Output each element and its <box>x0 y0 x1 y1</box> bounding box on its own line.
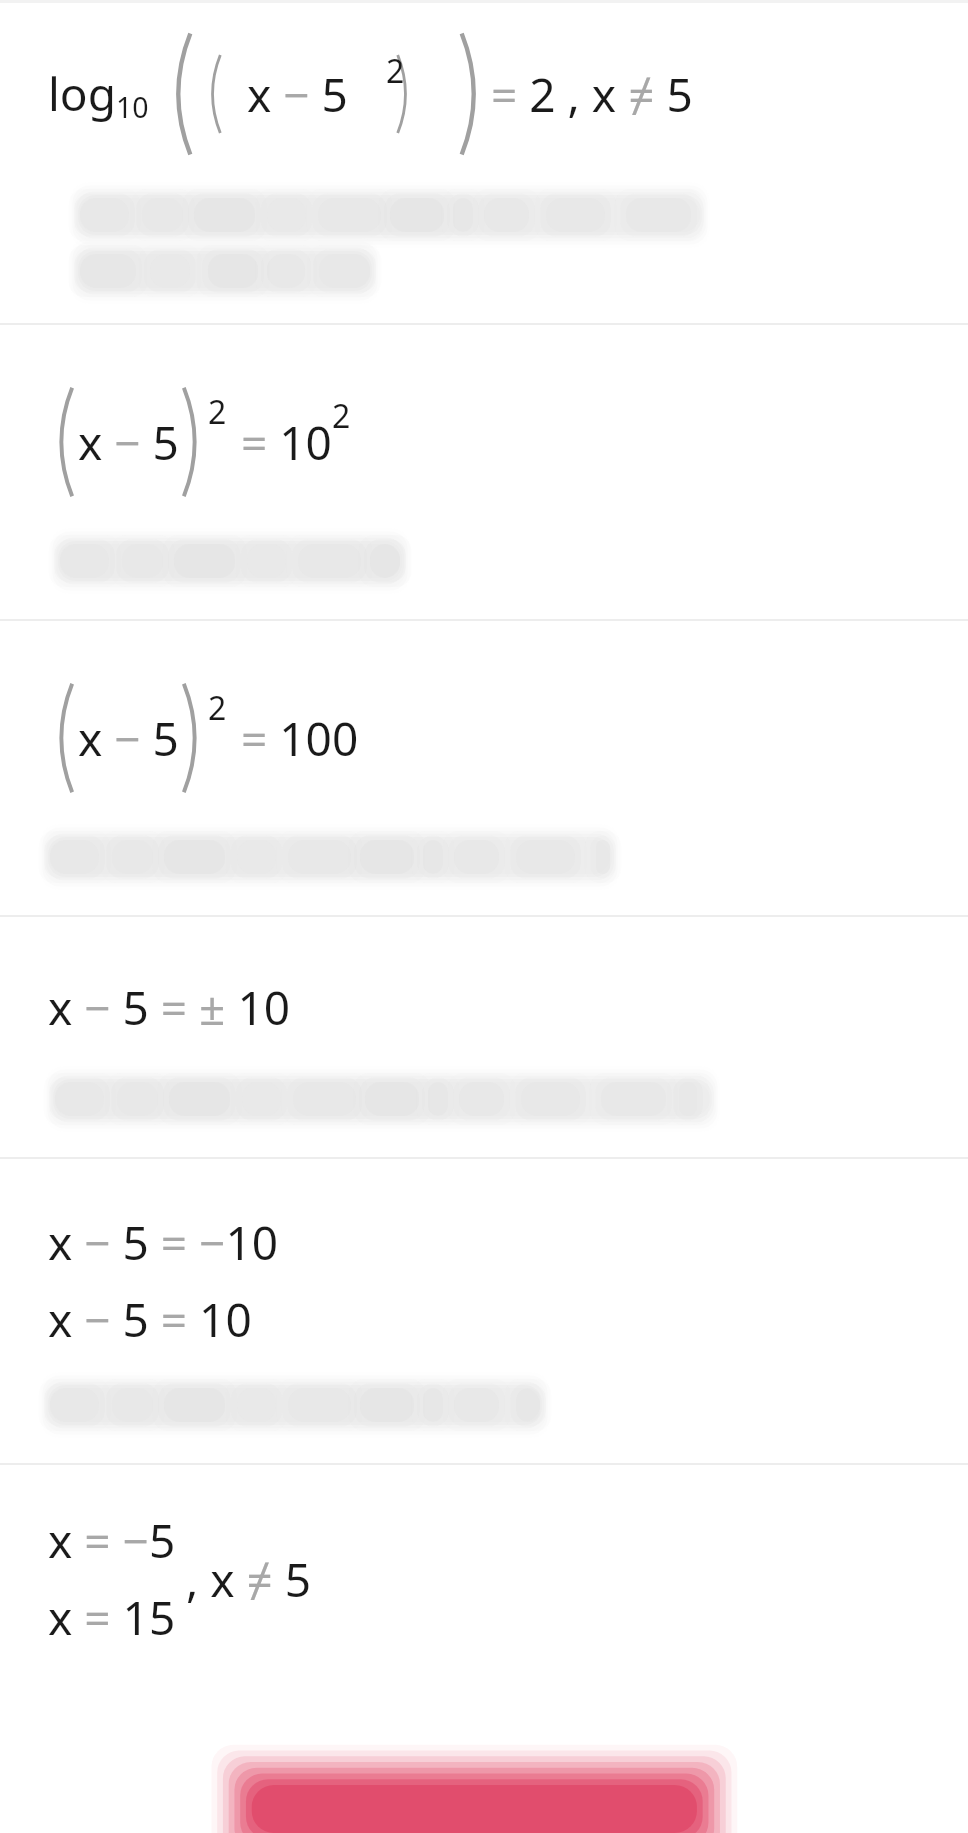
staticText: x − 5 <box>78 411 179 474</box>
button[interactable]: log10 <box>0 3 968 323</box>
staticText: = 2 , x ≠ 5 <box>491 63 693 126</box>
staticText: 2 <box>332 394 351 438</box>
staticText: x − 5 = 10 <box>48 1288 252 1351</box>
staticText: 2 <box>386 49 405 93</box>
staticText: = 100 <box>241 707 359 770</box>
staticText: x − 5 <box>78 707 179 770</box>
button[interactable]: x − 5 = ± 10 <box>0 917 968 1157</box>
staticText: x − 5 = ± 10 <box>48 976 291 1039</box>
staticText: x = −5 <box>48 1509 176 1572</box>
staticText: = 10 <box>241 411 332 474</box>
button[interactable]: x − 5 <box>0 325 968 619</box>
button[interactable]: x = −5 <box>0 1465 968 1833</box>
staticText: x = 15 <box>48 1586 176 1649</box>
button[interactable]: x − 5 <box>0 621 968 915</box>
staticText: , x ≠ 5 <box>186 1548 312 1611</box>
staticText: x − 5 = −10 <box>48 1211 279 1274</box>
staticText: 2 <box>208 686 227 730</box>
staticText: 2 <box>208 390 227 434</box>
button[interactable]: x − 5 = −10 <box>0 1159 968 1463</box>
staticText: x − 5 <box>247 63 348 126</box>
staticText: log10 <box>48 62 161 126</box>
